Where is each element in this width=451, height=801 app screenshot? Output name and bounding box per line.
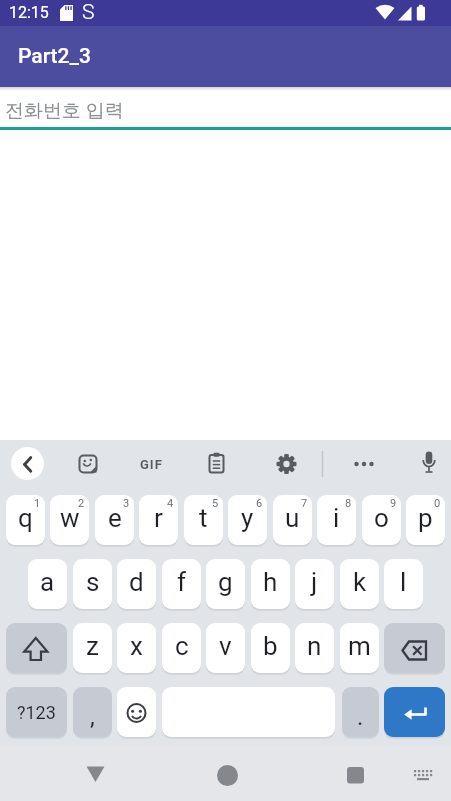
button[interactable] bbox=[274, 452, 299, 477]
staticText: s bbox=[86, 567, 100, 597]
button[interactable]: n bbox=[295, 623, 334, 673]
staticText: y bbox=[241, 503, 254, 533]
button[interactable]: q bbox=[6, 495, 45, 545]
staticText: u bbox=[285, 503, 300, 533]
staticText: b bbox=[263, 631, 278, 661]
staticText: v bbox=[219, 631, 232, 661]
staticText: 0 bbox=[434, 497, 441, 510]
staticText: 9 bbox=[390, 497, 397, 510]
button[interactable]: o bbox=[362, 495, 401, 545]
button[interactable] bbox=[162, 687, 335, 737]
staticText: w bbox=[60, 503, 80, 533]
staticText: 1 bbox=[34, 497, 41, 510]
staticText: o bbox=[374, 503, 389, 533]
button[interactable] bbox=[417, 452, 442, 477]
button[interactable]: r bbox=[139, 495, 178, 545]
staticText: 12:15 bbox=[9, 3, 49, 22]
staticText: 7 bbox=[301, 497, 308, 510]
button[interactable]: z bbox=[73, 623, 112, 673]
staticText: l bbox=[400, 567, 407, 597]
button[interactable]: x bbox=[117, 623, 156, 673]
button[interactable]: h bbox=[251, 559, 290, 609]
button[interactable]: j bbox=[295, 559, 334, 609]
button[interactable]: l bbox=[384, 559, 423, 609]
button[interactable]: v bbox=[206, 623, 245, 673]
staticText: 2 bbox=[78, 497, 85, 510]
button[interactable]: c bbox=[162, 623, 201, 673]
button[interactable]: , bbox=[73, 687, 112, 737]
button[interactable] bbox=[403, 755, 443, 795]
button[interactable]: e bbox=[95, 495, 134, 545]
button[interactable]: s bbox=[73, 559, 112, 609]
staticText: c bbox=[175, 631, 189, 661]
staticText: m bbox=[348, 631, 371, 661]
button[interactable]: ?123 bbox=[6, 687, 67, 737]
staticText: 4 bbox=[167, 497, 174, 510]
button[interactable]: . bbox=[342, 687, 379, 737]
staticText: . bbox=[357, 703, 364, 731]
button[interactable]: p bbox=[406, 495, 445, 545]
button[interactable] bbox=[352, 452, 377, 477]
staticText: f bbox=[177, 567, 187, 597]
button[interactable] bbox=[76, 452, 101, 477]
button[interactable] bbox=[117, 687, 156, 737]
staticText: 6 bbox=[256, 497, 263, 510]
staticText: e bbox=[108, 503, 122, 533]
button[interactable] bbox=[6, 623, 67, 673]
button[interactable]: i bbox=[317, 495, 356, 545]
button[interactable]: f bbox=[162, 559, 201, 609]
staticText: GIF bbox=[140, 457, 163, 472]
staticText: i bbox=[333, 503, 340, 533]
button[interactable] bbox=[335, 755, 375, 795]
button[interactable] bbox=[384, 687, 445, 737]
button[interactable]: t bbox=[184, 495, 223, 545]
staticText: g bbox=[218, 567, 233, 597]
staticText: q bbox=[18, 503, 33, 533]
button[interactable]: y bbox=[228, 495, 267, 545]
button[interactable] bbox=[204, 452, 229, 477]
staticText: 5 bbox=[212, 497, 219, 510]
staticText: a bbox=[40, 567, 55, 597]
button[interactable]: GIF bbox=[138, 452, 165, 477]
button[interactable]: a bbox=[28, 559, 67, 609]
staticText: , bbox=[90, 703, 95, 731]
staticText: 8 bbox=[345, 497, 352, 510]
staticText: d bbox=[129, 567, 144, 597]
button[interactable]: u bbox=[273, 495, 312, 545]
staticText: Part2_3 bbox=[18, 44, 91, 69]
button[interactable]: 전화번호 입력 bbox=[0, 91, 451, 131]
staticText: h bbox=[263, 567, 278, 597]
staticText: n bbox=[307, 631, 322, 661]
button[interactable] bbox=[384, 623, 445, 673]
button[interactable]: m bbox=[340, 623, 379, 673]
button[interactable] bbox=[207, 755, 247, 795]
button[interactable] bbox=[75, 755, 115, 795]
staticText: z bbox=[86, 631, 99, 661]
button[interactable]: g bbox=[206, 559, 245, 609]
staticText: r bbox=[154, 503, 163, 533]
button[interactable]: k bbox=[340, 559, 379, 609]
button[interactable]: w bbox=[50, 495, 89, 545]
button[interactable] bbox=[11, 447, 44, 480]
staticText: S bbox=[82, 0, 95, 25]
button[interactable]: b bbox=[251, 623, 290, 673]
staticText: 전화번호 입력 bbox=[5, 99, 124, 123]
staticText: x bbox=[130, 631, 143, 661]
button[interactable]: d bbox=[117, 559, 156, 609]
staticText: k bbox=[353, 567, 367, 597]
staticText: t bbox=[199, 503, 208, 533]
staticText: 3 bbox=[123, 497, 130, 510]
staticText: p bbox=[418, 503, 433, 533]
staticText: j bbox=[311, 567, 318, 597]
staticText: ?123 bbox=[17, 702, 56, 723]
